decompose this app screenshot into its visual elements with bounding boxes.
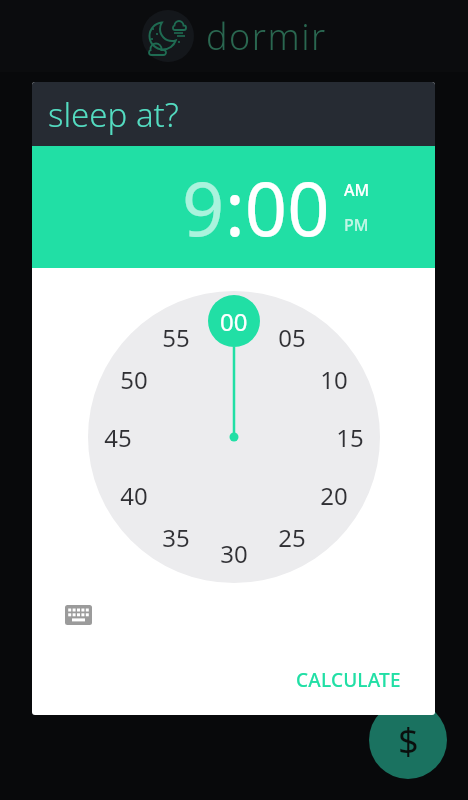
staticText: 45 [104, 421, 132, 454]
staticText: 05 [278, 321, 306, 354]
button[interactable]: 15 [322, 420, 378, 454]
staticText: dormir [206, 12, 327, 61]
staticText: 20 [320, 479, 348, 512]
staticText: 25 [278, 521, 306, 554]
button[interactable]: 20 [306, 478, 362, 512]
button[interactable]: :00 [225, 157, 330, 258]
button[interactable]: 9 [182, 157, 225, 258]
staticText: $ [398, 716, 419, 765]
button[interactable]: 25 [264, 520, 320, 554]
button[interactable]: 10 [306, 362, 362, 396]
button[interactable]: $ [369, 701, 447, 779]
staticText: 50 [120, 363, 148, 396]
button[interactable]: 45 [90, 420, 146, 454]
button[interactable]: 30 [206, 536, 262, 570]
button[interactable]: 05 [264, 320, 320, 354]
staticText: 35 [162, 521, 190, 554]
staticText: 30 [220, 537, 248, 570]
staticText: 55 [162, 321, 190, 354]
button[interactable]: dormir [0, 0, 468, 72]
button[interactable]: AM [344, 179, 370, 201]
staticText: CALCULATE [296, 667, 401, 693]
staticText: 40 [120, 479, 148, 512]
button[interactable]: 50 [106, 362, 162, 396]
button[interactable]: 55 [148, 320, 204, 354]
button[interactable]: 35 [148, 520, 204, 554]
button[interactable]: PM [344, 214, 369, 236]
button[interactable]: CALCULATE [292, 663, 405, 697]
button[interactable] [65, 605, 92, 625]
button[interactable]: 00 [208, 295, 260, 347]
staticText: 00 [220, 305, 248, 338]
staticText: sleep at? [48, 92, 179, 137]
staticText: 10 [320, 363, 348, 396]
button[interactable]: 40 [106, 478, 162, 512]
staticText: 15 [336, 421, 364, 454]
